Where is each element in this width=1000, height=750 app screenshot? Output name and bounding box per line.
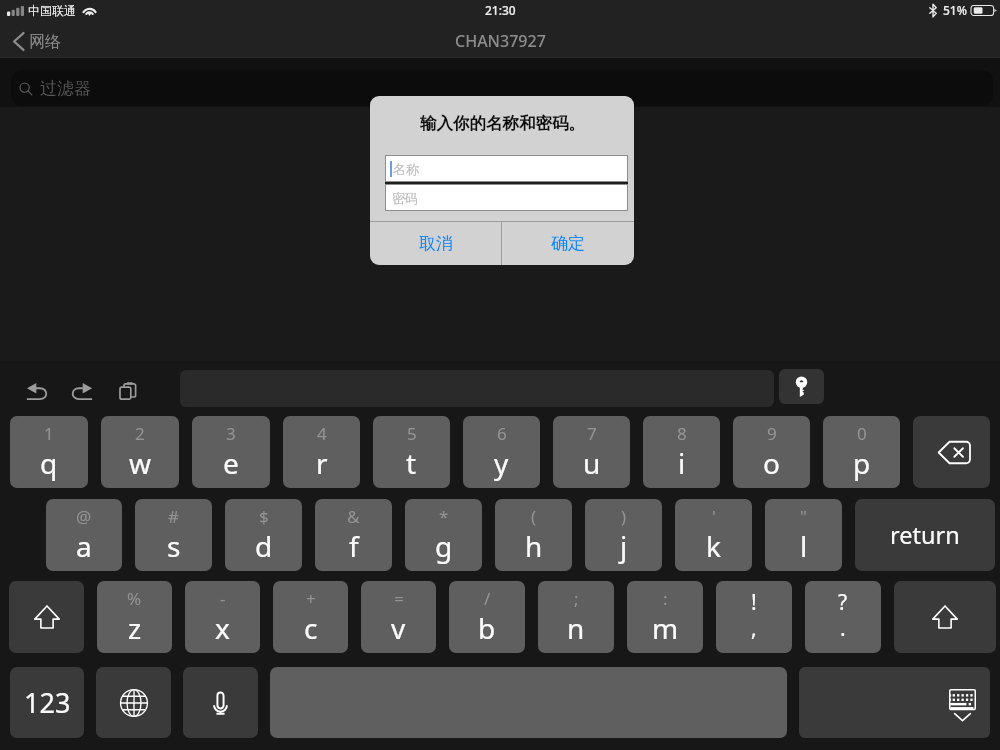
staticText: ! [751, 588, 757, 617]
staticText: y [494, 444, 509, 482]
button[interactable]: Shift [894, 581, 996, 653]
staticText: 6 [497, 422, 507, 445]
staticText: s [167, 527, 181, 565]
button[interactable]: " [765, 499, 842, 571]
button[interactable]: 1 [10, 416, 88, 488]
staticText: # [168, 505, 179, 528]
button[interactable]: Dictation [183, 667, 258, 738]
staticText: ; [574, 587, 579, 610]
button[interactable]: 6 [463, 416, 540, 488]
button[interactable]: 8 [643, 416, 720, 488]
staticText: = [394, 587, 404, 610]
button[interactable]: Switch keyboard [96, 667, 171, 738]
staticText: * [439, 505, 449, 528]
button[interactable]: Undo [26, 382, 48, 401]
staticText: : [663, 587, 668, 610]
button[interactable]: return [855, 499, 995, 571]
button[interactable]: 5 [373, 416, 450, 488]
staticText: b [478, 609, 496, 647]
staticText: 确定 [551, 233, 585, 254]
button[interactable]: 123 [10, 667, 84, 738]
button[interactable]: Copy [118, 381, 138, 401]
staticText: f [349, 527, 359, 565]
staticText: return [890, 519, 960, 551]
staticText: 过滤器 [40, 78, 91, 99]
button[interactable]: % [97, 581, 172, 653]
staticText: 0 [857, 422, 867, 445]
staticText: - [220, 587, 226, 610]
staticText: 密码 [392, 190, 418, 206]
button[interactable]: Hide keyboard [799, 667, 990, 738]
staticText: n [567, 609, 585, 647]
button[interactable]: 0 [823, 416, 900, 488]
staticText: a [76, 527, 92, 565]
button[interactable]: * [405, 499, 482, 571]
button[interactable]: 2 [101, 416, 179, 488]
button[interactable]: ? [805, 581, 881, 653]
staticText: g [435, 527, 453, 565]
button[interactable]: # [135, 499, 212, 571]
staticText: 8 [677, 422, 687, 445]
button[interactable]: Redo [71, 382, 93, 401]
staticText: x [215, 609, 230, 647]
button[interactable]: ) [585, 499, 662, 571]
staticText: o [763, 444, 780, 482]
button[interactable]: ; [538, 581, 614, 653]
button[interactable]: - [185, 581, 260, 653]
staticText: d [255, 527, 273, 565]
staticText: ) [621, 505, 627, 528]
button[interactable]: 3 [192, 416, 270, 488]
staticText: m [652, 609, 679, 647]
button[interactable]: ( [495, 499, 572, 571]
button[interactable]: = [361, 581, 436, 653]
button[interactable]: 名称 [386, 156, 627, 181]
staticText: l [800, 527, 808, 565]
button[interactable]: ' [675, 499, 752, 571]
button[interactable]: Shift [9, 581, 84, 653]
staticText: w [129, 444, 152, 482]
button[interactable]: @ [46, 499, 122, 571]
staticText: 123 [24, 684, 71, 721]
staticText: 9 [767, 422, 777, 445]
button[interactable]: 确定 [502, 221, 634, 265]
button[interactable]: 过滤器 [11, 70, 993, 106]
button[interactable]: 取消 [370, 221, 501, 265]
staticText: p [853, 444, 871, 482]
staticText: 2 [135, 422, 145, 445]
button[interactable]: & [315, 499, 392, 571]
staticText: z [128, 609, 142, 647]
button[interactable]: $ [225, 499, 302, 571]
staticText: @ [76, 505, 92, 528]
button[interactable]: / [449, 581, 525, 653]
staticText: % [127, 587, 142, 610]
staticText: & [347, 505, 360, 528]
staticText: 中国联通 [28, 3, 76, 18]
staticText: v [391, 609, 406, 647]
staticText: q [40, 444, 58, 482]
staticText: 51% [943, 2, 967, 18]
staticText: 7 [587, 422, 597, 445]
staticText: k [706, 527, 721, 565]
staticText: r [316, 444, 328, 482]
button[interactable]: 4 [283, 416, 360, 488]
staticText: 网络 [29, 32, 61, 52]
staticText: 1 [44, 422, 54, 445]
staticText: 4 [317, 422, 327, 445]
staticText: t [406, 444, 417, 482]
button[interactable]: ! [716, 581, 792, 653]
staticText: h [525, 527, 543, 565]
button[interactable]: : [627, 581, 703, 653]
button[interactable]: 网络 [0, 27, 69, 56]
button[interactable]: 9 [733, 416, 810, 488]
button[interactable]: 7 [553, 416, 630, 488]
button[interactable]: Backspace [913, 416, 990, 488]
staticText: / [484, 587, 491, 610]
staticText: i [678, 444, 686, 482]
staticText: ( [531, 505, 537, 528]
button[interactable]: + [273, 581, 348, 653]
button[interactable]: Passwords [779, 369, 824, 404]
button[interactable]: 密码 [386, 185, 627, 210]
staticText: c [304, 609, 318, 647]
